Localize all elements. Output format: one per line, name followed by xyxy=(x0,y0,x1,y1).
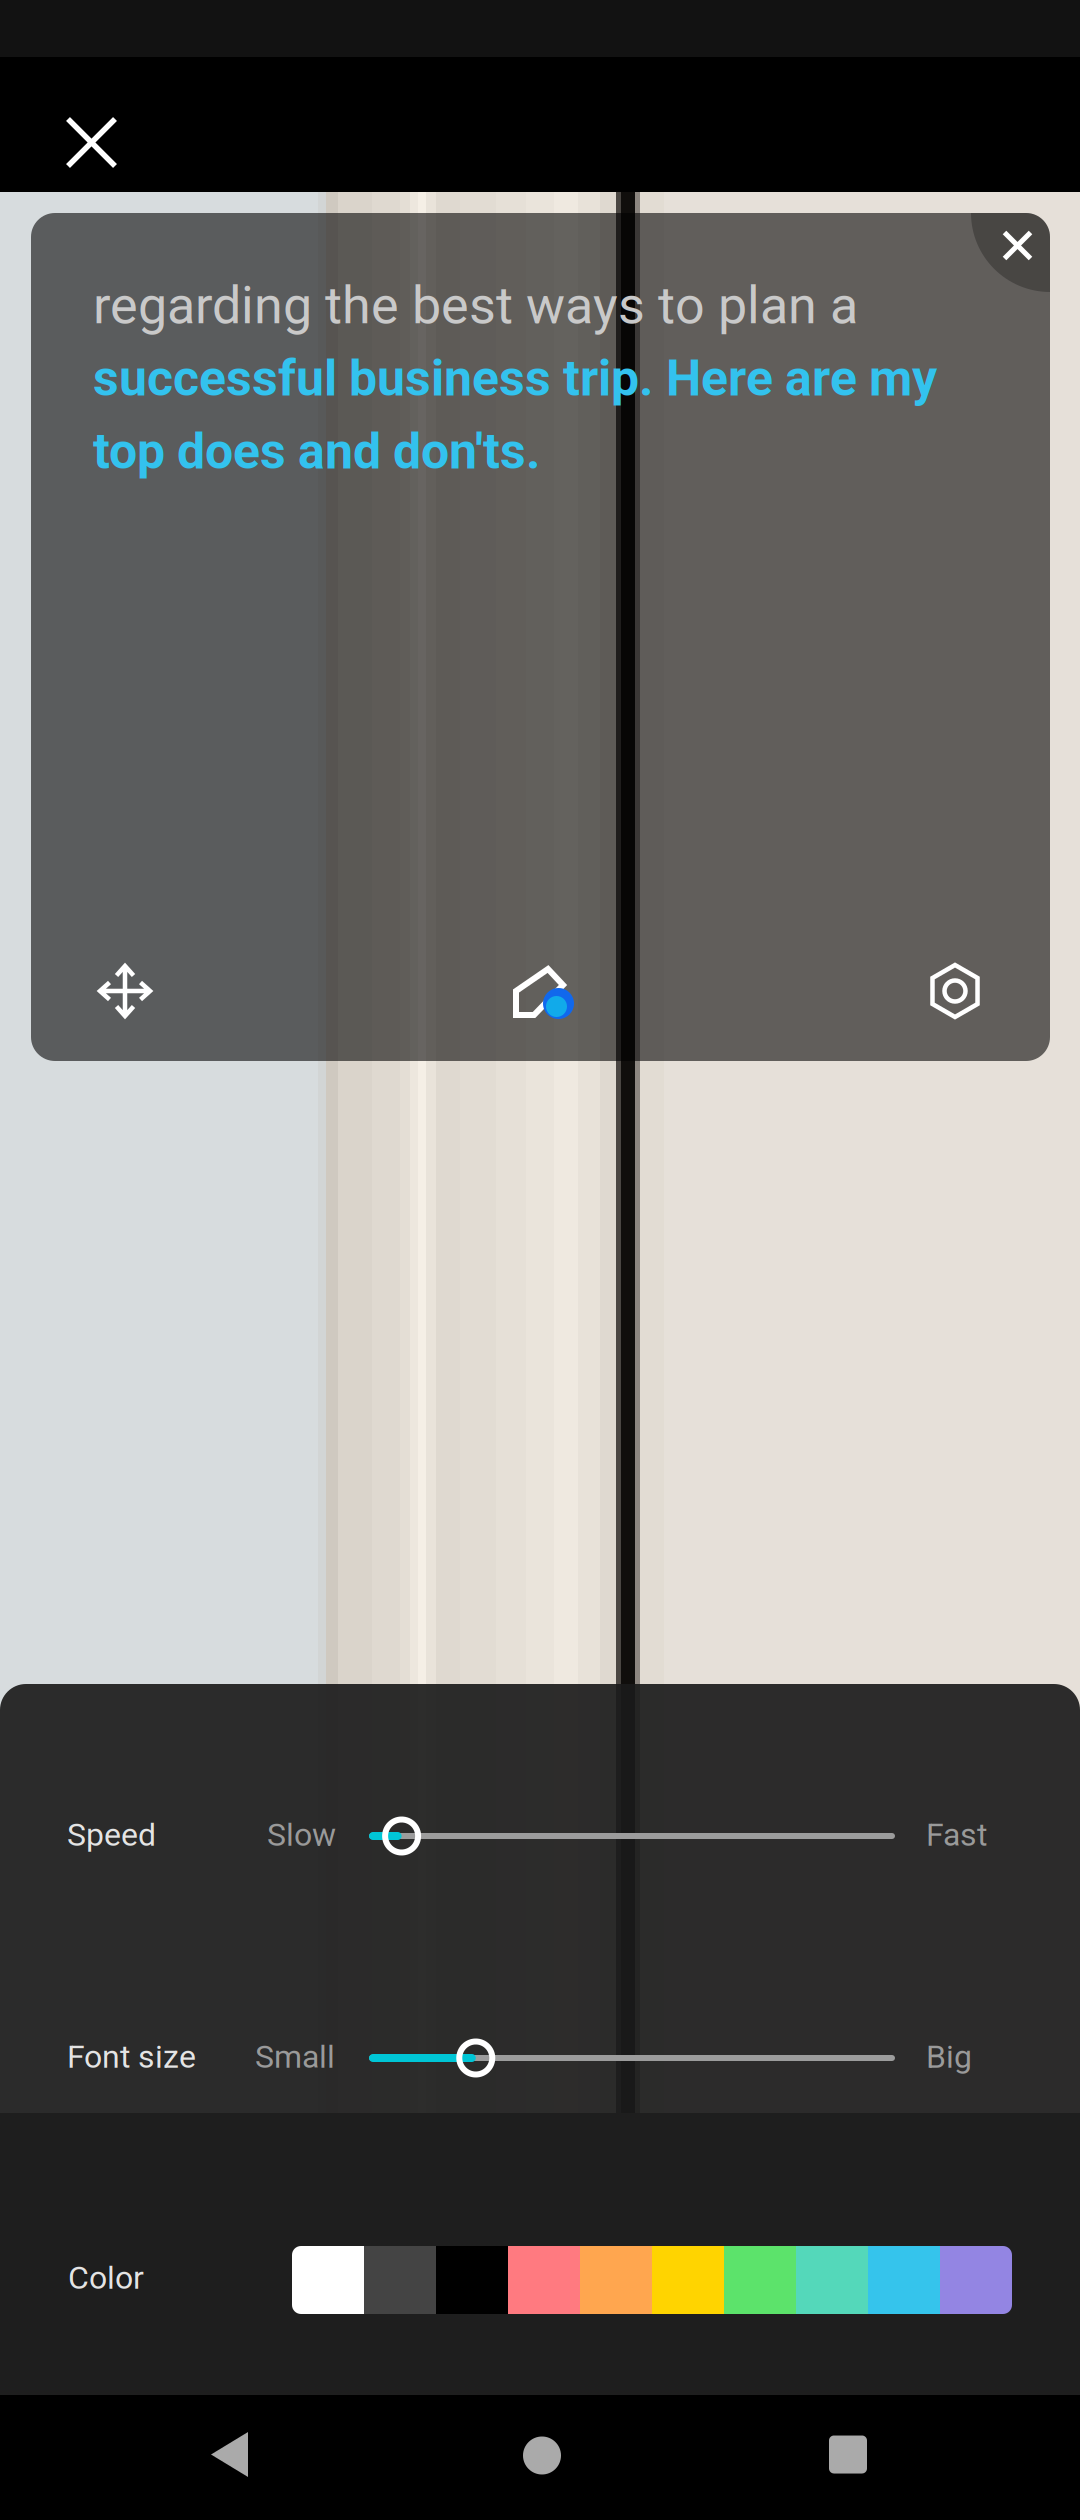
staticText: Fast xyxy=(926,1816,987,1853)
button[interactable]: Recents xyxy=(783,2392,913,2517)
staticText: regarding the best ways to plan a xyxy=(93,275,858,336)
button[interactable]: Back xyxy=(164,2392,294,2517)
button[interactable]: Hide script xyxy=(965,193,1069,297)
button[interactable]: Colour 10 xyxy=(940,2246,1012,2314)
staticText: Big xyxy=(926,2038,972,2075)
button[interactable]: Edit script xyxy=(487,937,599,1049)
staticText: Small xyxy=(255,2038,335,2075)
staticText: Speed xyxy=(67,1816,156,1853)
staticText: top does and don'ts. xyxy=(93,422,541,481)
staticText: Slow xyxy=(267,1816,336,1853)
staticText: successful business trip. Here are my xyxy=(93,349,937,408)
button[interactable]: Script settings xyxy=(899,935,1011,1047)
button[interactable]: Home xyxy=(477,2393,607,2518)
staticText: Color xyxy=(68,2259,144,2296)
button[interactable]: Move panel xyxy=(69,935,181,1047)
button[interactable]: Close camera xyxy=(0,57,182,192)
staticText: Font size xyxy=(67,2038,196,2075)
button[interactable]: Colour 1 xyxy=(292,2246,364,2314)
